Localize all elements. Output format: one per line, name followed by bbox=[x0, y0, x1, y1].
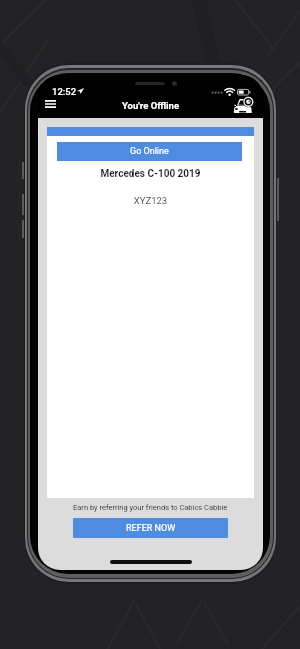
staticText: REFER NOW bbox=[126, 523, 176, 534]
button[interactable]: My vehicle bbox=[231, 95, 255, 115]
button[interactable]: Open navigation menu bbox=[39, 94, 61, 114]
staticText: XYZ123 bbox=[47, 195, 254, 206]
staticText: Mercedes C-100 2019 bbox=[47, 168, 254, 180]
button[interactable]: Go Online bbox=[57, 142, 242, 161]
button[interactable]: REFER NOW bbox=[73, 518, 228, 538]
staticText: You're Offline bbox=[38, 100, 263, 111]
staticText: 12:52 bbox=[52, 86, 77, 97]
staticText: Earn by referring your friends to Cabics… bbox=[73, 503, 228, 512]
staticText: Go Online bbox=[130, 146, 169, 157]
